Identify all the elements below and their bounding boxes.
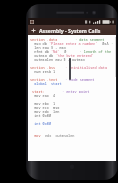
staticText: mov ecx, msg xyxy=(30,105,60,109)
staticText: 'the byte entered' xyxy=(56,53,94,57)
staticText: mov edx, len xyxy=(30,109,60,113)
staticText: mov xyxy=(30,133,45,137)
staticText: section .bss xyxy=(30,65,56,69)
staticText: global _start xyxy=(30,81,62,85)
staticText: ; uninitialised data xyxy=(65,65,107,69)
staticText: , 0xA xyxy=(98,41,109,45)
staticText: ; entry point xyxy=(62,89,90,93)
staticText: section .data xyxy=(30,37,58,41)
staticText: ; code segment xyxy=(65,77,95,81)
staticText: '%d' xyxy=(51,49,60,53)
button[interactable]: Navigate up xyxy=(30,27,37,34)
staticText: nfmt db xyxy=(30,49,51,53)
staticText: , 0 xyxy=(60,49,67,53)
staticText: int 0x80 xyxy=(30,113,51,117)
staticText: edx, outmsglen xyxy=(45,133,75,137)
staticText: num resb 1 xyxy=(30,69,56,73)
staticText: ; data segment xyxy=(75,37,105,41)
button[interactable]: section .data xyxy=(28,35,116,161)
staticText: mov eax, 4 xyxy=(30,93,56,97)
staticText: 'Please enter a number' xyxy=(49,41,98,45)
staticText: outmsglen equ $ - outmsg xyxy=(30,57,85,61)
staticText: outmsg db xyxy=(30,53,56,57)
staticText: len equ $ - msg xyxy=(30,45,66,49)
staticText: int 0x80 xyxy=(30,121,51,125)
staticText: Assembly - System Calls xyxy=(39,27,101,34)
staticText: mov ebx, 1 xyxy=(30,101,56,105)
button[interactable]: Navigate up xyxy=(28,25,116,35)
staticText: _start: xyxy=(30,89,45,93)
staticText: ; prompt xyxy=(109,41,115,45)
staticText: section .text xyxy=(30,77,58,81)
staticText: ; length of the message xyxy=(67,49,115,53)
staticText: msg db xyxy=(30,41,49,45)
